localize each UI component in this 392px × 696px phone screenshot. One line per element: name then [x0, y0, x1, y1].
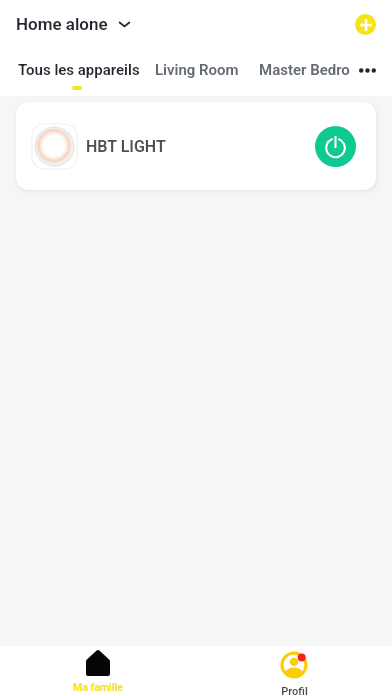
- staticText: Tous les appareils: [18, 61, 140, 79]
- staticText: HBT LIGHT: [86, 137, 166, 156]
- staticText: Home alone: [16, 14, 108, 34]
- staticText: Master Bedro: [259, 61, 350, 79]
- button[interactable]: Profil: [196, 646, 392, 696]
- staticText: Living Room: [155, 61, 239, 79]
- staticText: Profil: [281, 685, 308, 696]
- button[interactable]: HBT LIGHT: [16, 102, 376, 190]
- button[interactable]: Living Room: [155, 41, 239, 86]
- button[interactable]: Add device: [355, 14, 376, 35]
- button[interactable]: Home alone: [16, 14, 130, 34]
- staticText: Ma famille: [73, 681, 123, 693]
- button[interactable]: Power toggle: [315, 126, 356, 167]
- button[interactable]: More options: [358, 41, 376, 96]
- button[interactable]: Master Bedro: [259, 41, 350, 86]
- button[interactable]: Ma famille: [0, 646, 196, 696]
- button[interactable]: Tous les appareils: [18, 41, 140, 90]
